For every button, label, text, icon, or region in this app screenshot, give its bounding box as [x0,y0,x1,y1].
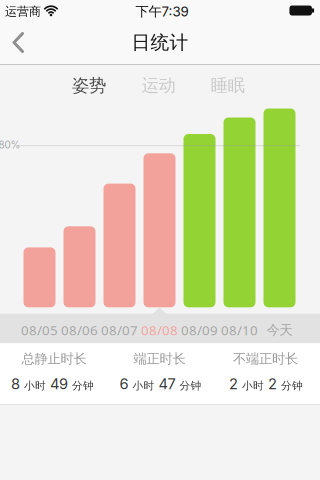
staticText: 80% [0,139,20,151]
staticText: 运营商 [5,4,41,19]
staticText: 2 [229,375,238,393]
staticText: 08/07 [101,321,138,339]
staticText: 49 [50,375,68,393]
staticText: 总静止时长 [21,351,86,367]
staticText: 睡眠 [211,75,245,96]
staticText: 08/06 [61,321,98,339]
staticText: 姿势 [72,75,106,96]
staticText: 小时 [132,379,154,392]
staticText: 08/08 [141,321,178,339]
staticText: 今天 [266,322,292,338]
staticText: 分钟 [72,379,94,392]
staticText: 2 [268,375,277,393]
staticText: 不端正时长 [233,351,298,367]
staticText: 下午7:39 [135,3,188,20]
staticText: 分钟 [179,379,201,392]
staticText: 运动 [141,75,175,96]
staticText: 分钟 [281,379,303,392]
staticText: 小时 [242,379,264,392]
staticText: 08/05 [21,321,58,339]
staticText: 小时 [24,379,46,392]
staticText: 08/09 [181,321,218,339]
staticText: 08/10 [221,321,258,339]
staticText: 6 [119,375,128,393]
staticText: 47 [158,375,175,393]
staticText: 日统计 [131,31,188,54]
staticText: 端正时长 [133,351,185,367]
staticText: 8 [11,375,20,393]
